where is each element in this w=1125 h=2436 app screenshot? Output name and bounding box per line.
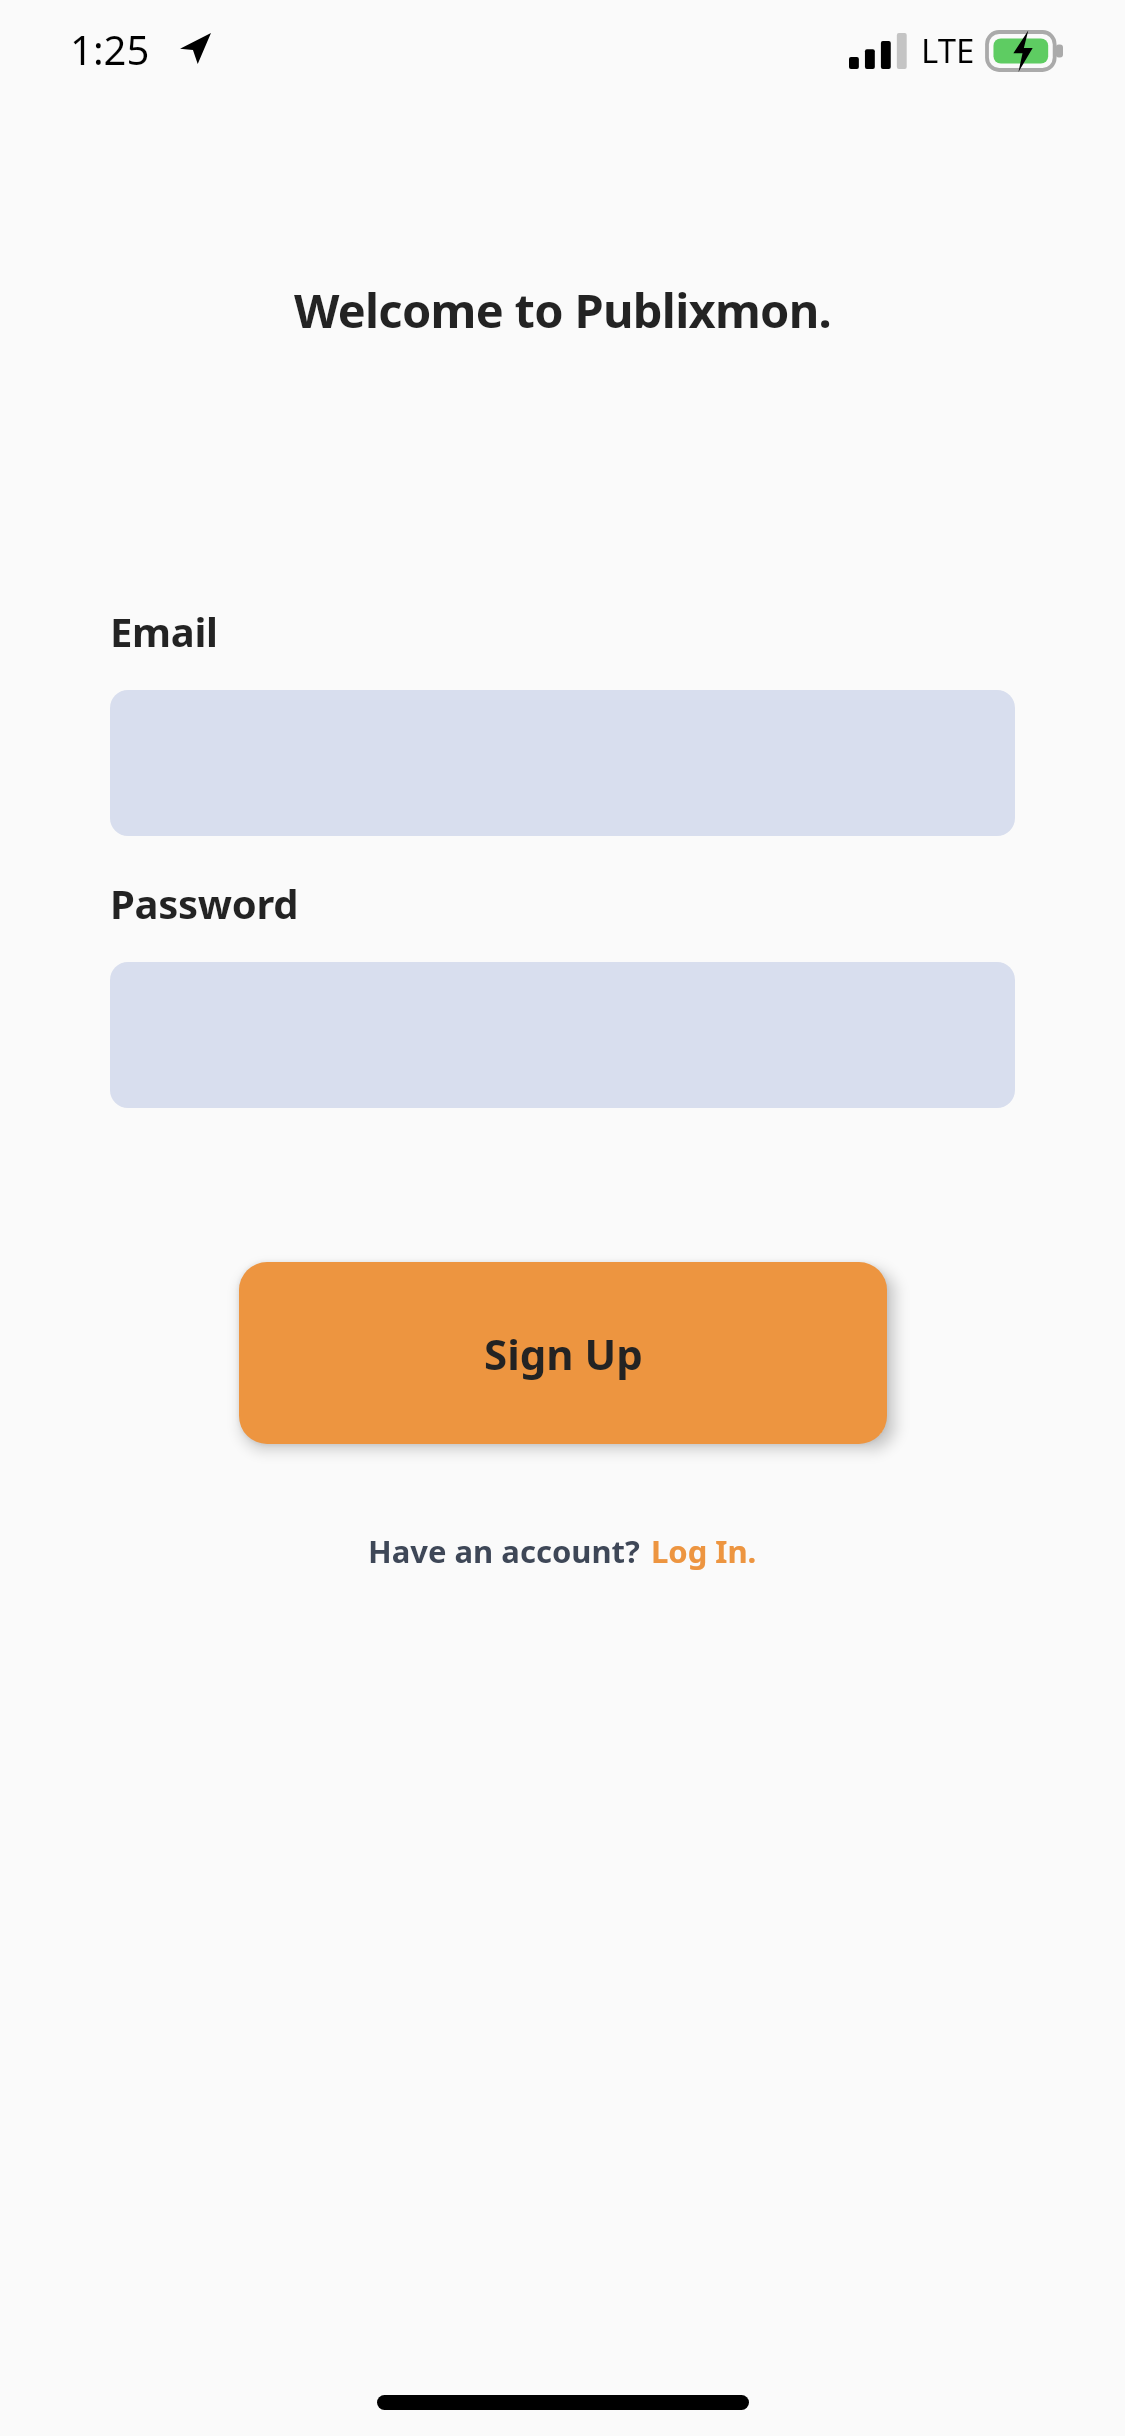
- staticText: 1:25: [70, 22, 150, 76]
- button[interactable]: Log In.: [651, 1530, 757, 1572]
- staticText: Have an account?: [368, 1530, 640, 1572]
- staticText: Email: [110, 604, 218, 658]
- button[interactable]: Sign Up: [239, 1262, 887, 1444]
- staticText: Sign Up: [484, 1325, 643, 1382]
- staticText: Log In.: [651, 1530, 757, 1572]
- staticText: Password: [110, 876, 299, 930]
- staticText: LTE: [921, 28, 975, 73]
- staticText: Welcome to Publixmon.: [0, 278, 1125, 342]
